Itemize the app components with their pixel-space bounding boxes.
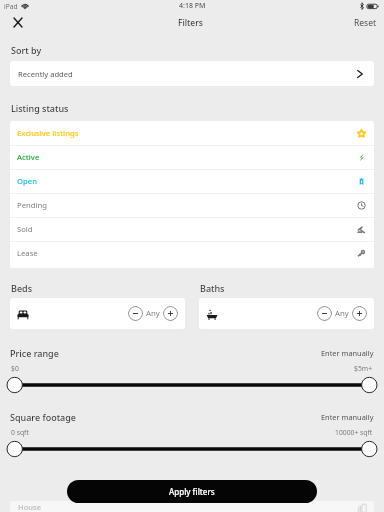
button[interactable]: Enter manually (319, 410, 376, 424)
staticText: 0 sqft (11, 428, 29, 437)
button[interactable]: Sold (10, 217, 374, 241)
button[interactable]: Lease (10, 241, 374, 265)
staticText: Listing status (11, 102, 69, 114)
button[interactable]: Open (10, 169, 374, 193)
button[interactable]: Exclusive listings (10, 121, 374, 145)
button[interactable]: Increase (163, 306, 178, 321)
staticText: iPad (4, 2, 18, 11)
button[interactable]: Decrease (317, 306, 332, 321)
button[interactable]: Increase (352, 306, 367, 321)
staticText: Enter manually (321, 412, 374, 422)
staticText: Any (335, 308, 349, 319)
staticText: Square footage (10, 411, 77, 423)
staticText: $0 (11, 364, 19, 373)
staticText: Exclusive listings (17, 128, 79, 138)
staticText: 4:18 PM (179, 1, 206, 11)
button[interactable]: Close (9, 14, 26, 31)
staticText: 10000+ sqft (335, 428, 373, 437)
staticText: Reset (354, 17, 377, 29)
staticText: Beds (11, 282, 33, 294)
staticText: House (18, 502, 42, 512)
button[interactable]: Decrease (128, 306, 143, 321)
staticText: Lease (17, 248, 38, 258)
staticText: Any (146, 308, 160, 319)
staticText: Baths (200, 282, 225, 294)
staticText: Filters (178, 17, 203, 29)
staticText: Apply filters (169, 486, 215, 497)
button[interactable]: Enter manually (319, 346, 376, 360)
staticText: Recently added (18, 69, 73, 79)
button[interactable]: Recently added (10, 61, 374, 86)
button[interactable]: Reset (352, 15, 379, 31)
button[interactable]: Apply filters (67, 480, 317, 503)
staticText: Pending (17, 200, 47, 210)
staticText: $5m+ (354, 364, 373, 373)
staticText: Active (17, 152, 40, 162)
staticText: Open (17, 176, 38, 186)
staticText: Sold (17, 224, 33, 234)
button[interactable]: Active (10, 145, 374, 169)
button[interactable]: Pending (10, 193, 374, 217)
staticText: Price range (10, 347, 59, 359)
staticText: Enter manually (321, 348, 374, 358)
staticText: Sort by (11, 44, 42, 56)
